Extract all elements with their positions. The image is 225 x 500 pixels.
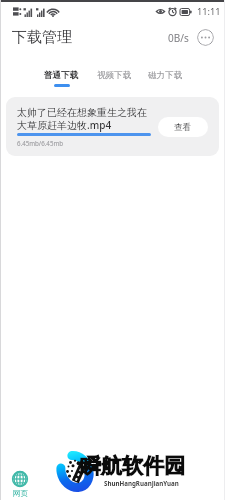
staticText: 11:11 bbox=[197, 5, 221, 18]
staticText: 网页 bbox=[13, 489, 28, 498]
staticText: ShunHangRuanJianYuan bbox=[104, 479, 179, 487]
staticText: 6.45mb/6.45mb bbox=[17, 139, 64, 147]
staticText: 视频下载 bbox=[97, 70, 132, 81]
button[interactable]: 普通下载 bbox=[44, 70, 79, 87]
button[interactable]: More options bbox=[197, 29, 214, 46]
staticText: 下载管理 bbox=[12, 28, 72, 47]
staticText: 太帅了已经在想象重生之我在大草原赶羊边牧.mp4 bbox=[17, 106, 151, 132]
staticText: 磁力下载 bbox=[148, 70, 183, 81]
staticText: 普通下载 bbox=[44, 70, 79, 81]
staticText: 瞬航软件园 bbox=[80, 453, 185, 479]
button[interactable]: 查看 bbox=[158, 117, 208, 137]
button[interactable]: 磁力下载 bbox=[148, 70, 183, 87]
staticText: 0B/s bbox=[168, 31, 189, 45]
staticText: 查看 bbox=[174, 122, 192, 133]
button[interactable]: 太帅了已经在想象重生之我在大草原赶羊边牧.mp4 bbox=[6, 97, 219, 156]
button[interactable]: 视频下载 bbox=[97, 70, 132, 87]
button[interactable]: 网页 bbox=[5, 471, 35, 498]
